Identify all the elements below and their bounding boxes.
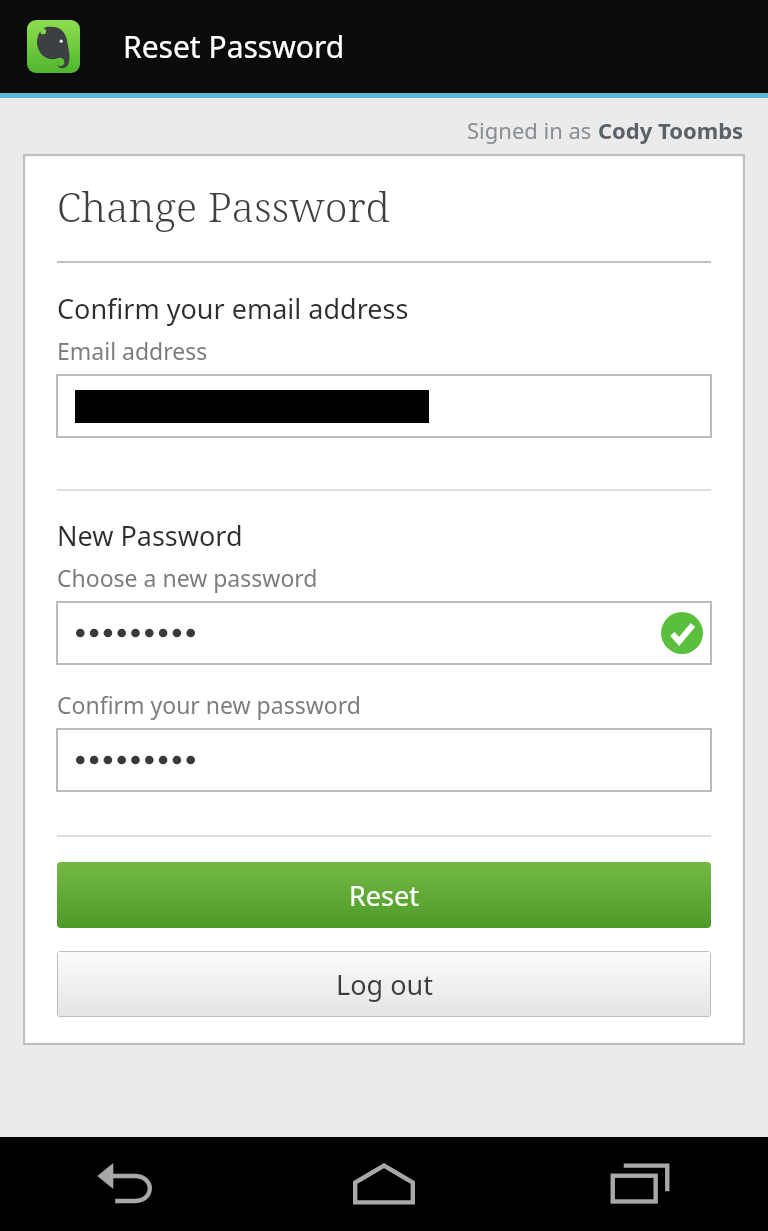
button[interactable]: Recent apps (512, 1137, 768, 1231)
button[interactable]: Email address field (57, 375, 711, 437)
staticText: Email address (57, 335, 208, 366)
button[interactable]: Reset (57, 862, 711, 928)
button[interactable]: Home (256, 1137, 512, 1231)
staticText: Confirm your new password (57, 689, 361, 720)
staticText: Cody Toombs (598, 115, 744, 145)
button[interactable]: Password field (57, 602, 711, 664)
button[interactable]: Log out (57, 951, 711, 1017)
button[interactable]: Evernote (27, 20, 80, 73)
staticText: Change Password (57, 178, 390, 234)
staticText: Choose a new password (57, 562, 318, 593)
button[interactable]: Password field (57, 729, 711, 791)
staticText: Signed in as (467, 115, 598, 145)
staticText: New Password (57, 517, 243, 554)
staticText: Reset Password (123, 26, 345, 67)
button[interactable]: Back (0, 1137, 256, 1231)
staticText: Confirm your email address (57, 290, 409, 327)
staticText: Log out (336, 966, 433, 1003)
staticText: Reset (349, 877, 419, 914)
